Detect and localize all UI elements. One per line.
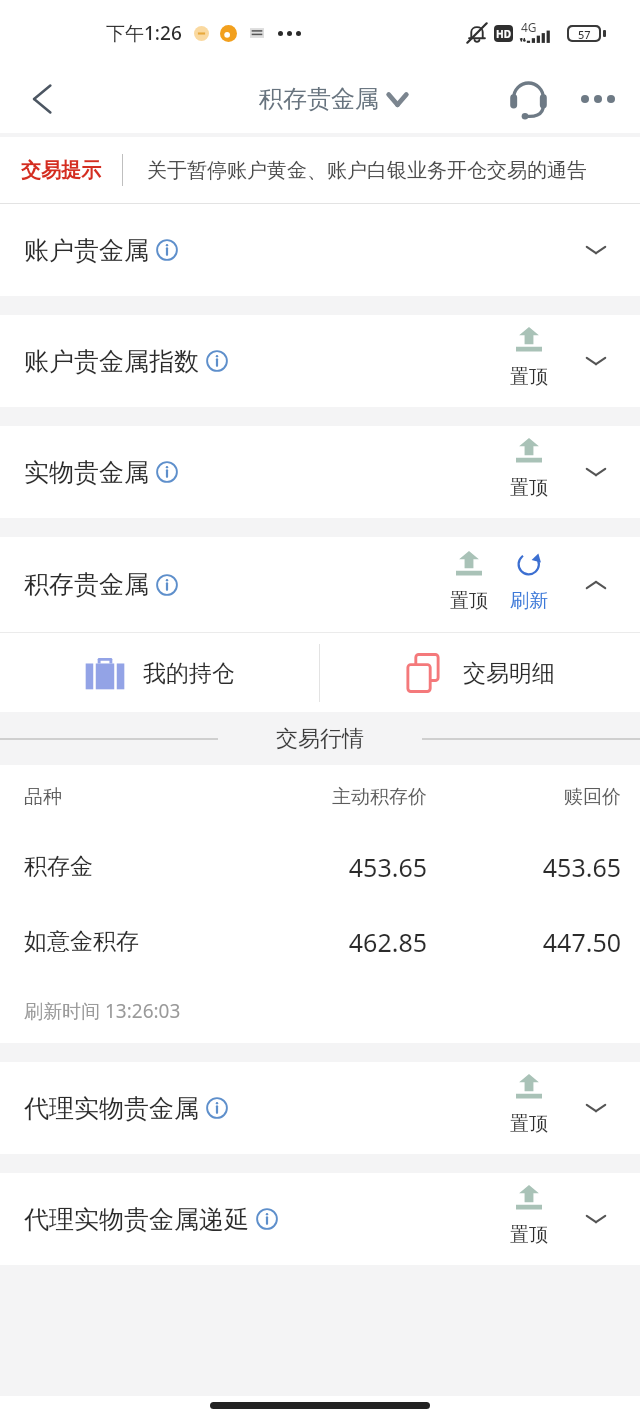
staticText: 447.50 bbox=[427, 925, 621, 959]
staticText: 置顶 bbox=[510, 476, 548, 500]
button[interactable]: 积存贵金属 bbox=[0, 537, 640, 632]
staticText: 刷新 bbox=[510, 589, 548, 613]
staticText: 账户贵金属 bbox=[24, 235, 149, 266]
staticText: 462.85 bbox=[219, 925, 427, 959]
button[interactable]: 展开 bbox=[574, 339, 618, 383]
button[interactable]: 说明 bbox=[156, 574, 178, 596]
staticText: HD bbox=[496, 27, 511, 41]
button[interactable]: 置顶 bbox=[506, 1185, 552, 1247]
button[interactable]: 交易提示 bbox=[0, 137, 640, 203]
staticText: 积存贵金属 bbox=[24, 569, 149, 600]
staticText: 453.65 bbox=[427, 850, 621, 884]
staticText: 关于暂停账户黄金、账户白银业务开仓交易的通告 bbox=[147, 158, 587, 183]
button[interactable]: 展开 bbox=[574, 1197, 618, 1241]
button[interactable]: 账户贵金属指数 bbox=[0, 315, 640, 407]
staticText: 如意金积存 bbox=[24, 927, 219, 956]
staticText: 57 bbox=[578, 27, 591, 40]
staticText: 刷新时间 13:26:03 bbox=[24, 998, 181, 1024]
staticText: 交易行情 bbox=[276, 725, 364, 753]
button[interactable]: 更多 bbox=[572, 73, 624, 125]
button[interactable]: 客服 bbox=[502, 73, 554, 125]
button[interactable]: 展开 bbox=[574, 1086, 618, 1130]
button[interactable]: 置顶 bbox=[506, 438, 552, 500]
button[interactable]: 收起 bbox=[574, 563, 618, 607]
button[interactable]: 交易明细 bbox=[320, 633, 640, 712]
staticText: 交易提示 bbox=[21, 158, 101, 183]
staticText: 置顶 bbox=[450, 589, 488, 613]
staticText: 赎回价 bbox=[427, 785, 621, 809]
staticText: 4G bbox=[521, 19, 537, 35]
staticText: 我的持仓 bbox=[143, 659, 235, 688]
button[interactable]: 返回 bbox=[16, 73, 68, 125]
button[interactable]: 说明 bbox=[206, 350, 228, 372]
staticText: 置顶 bbox=[510, 1112, 548, 1136]
button[interactable]: 实物贵金属 bbox=[0, 426, 640, 518]
button[interactable]: 账户贵金属 bbox=[0, 204, 640, 296]
button[interactable]: 说明 bbox=[156, 239, 178, 261]
button[interactable]: 积存贵金属 bbox=[251, 78, 416, 120]
button[interactable]: 刷新 bbox=[506, 551, 552, 613]
button[interactable]: 置顶 bbox=[506, 1074, 552, 1136]
staticText: 453.65 bbox=[219, 850, 427, 884]
staticText: 主动积存价 bbox=[219, 785, 427, 809]
button[interactable]: 置顶 bbox=[506, 327, 552, 389]
staticText: 交易明细 bbox=[463, 659, 555, 688]
button[interactable]: 说明 bbox=[256, 1208, 278, 1230]
staticText: 品种 bbox=[24, 785, 219, 809]
staticText: 代理实物贵金属递延 bbox=[24, 1204, 249, 1235]
staticText: 账户贵金属指数 bbox=[24, 346, 199, 377]
button[interactable]: 我的持仓 bbox=[0, 633, 319, 712]
staticText: 积存金 bbox=[24, 852, 219, 881]
button[interactable]: 置顶 bbox=[446, 551, 492, 613]
staticText: 实物贵金属 bbox=[24, 457, 149, 488]
staticText: 代理实物贵金属 bbox=[24, 1093, 199, 1124]
button[interactable]: 代理实物贵金属 bbox=[0, 1062, 640, 1154]
staticText: 下午1:26 bbox=[106, 20, 182, 46]
button[interactable]: 展开 bbox=[574, 450, 618, 494]
button[interactable]: 展开 bbox=[574, 228, 618, 272]
staticText: 积存贵金属 bbox=[259, 84, 379, 114]
button[interactable]: 说明 bbox=[156, 461, 178, 483]
staticText: 置顶 bbox=[510, 365, 548, 389]
button[interactable]: 说明 bbox=[206, 1097, 228, 1119]
button[interactable]: 代理实物贵金属递延 bbox=[0, 1173, 640, 1265]
staticText: 置顶 bbox=[510, 1223, 548, 1247]
